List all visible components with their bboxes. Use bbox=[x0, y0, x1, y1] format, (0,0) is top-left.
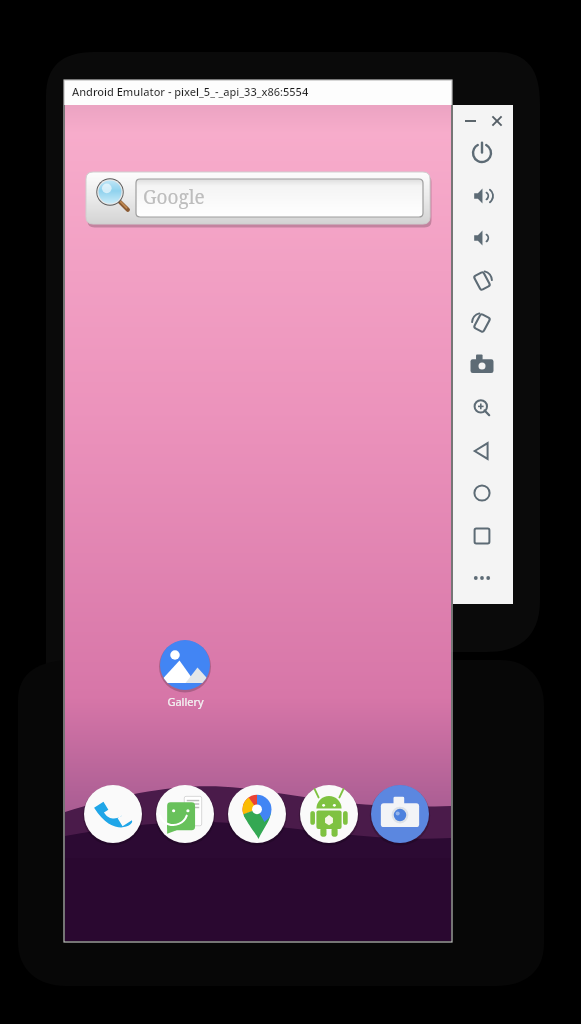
button[interactable]: Gallery bbox=[152, 636, 218, 709]
button[interactable]: Phone bbox=[84, 785, 142, 843]
button[interactable]: Rotate left bbox=[464, 263, 500, 299]
button[interactable]: Rotate right bbox=[464, 305, 500, 341]
staticText: Gallery bbox=[167, 694, 204, 709]
button[interactable]: More bbox=[464, 560, 500, 596]
button[interactable]: Camera bbox=[371, 785, 429, 843]
button[interactable]: Close bbox=[488, 112, 506, 130]
button[interactable]: Messages bbox=[156, 785, 214, 843]
button[interactable]: Take screenshot bbox=[464, 347, 500, 383]
staticText: Google bbox=[143, 184, 205, 210]
button[interactable]: Back bbox=[464, 433, 500, 469]
button[interactable]: Android bbox=[300, 785, 358, 843]
button[interactable]: Zoom bbox=[464, 390, 500, 426]
staticText: Android Emulator - pixel_5_-_api_33_x86:… bbox=[72, 84, 309, 99]
button[interactable]: Power bbox=[464, 135, 500, 171]
button[interactable]: Volume down bbox=[464, 220, 500, 256]
button[interactable]: Maps bbox=[228, 785, 286, 843]
button[interactable]: Minimize bbox=[462, 112, 480, 130]
button[interactable]: Home bbox=[464, 475, 500, 511]
button[interactable]: Google search bbox=[86, 172, 430, 224]
button[interactable]: Overview bbox=[464, 518, 500, 554]
button[interactable]: Volume up bbox=[464, 178, 500, 214]
